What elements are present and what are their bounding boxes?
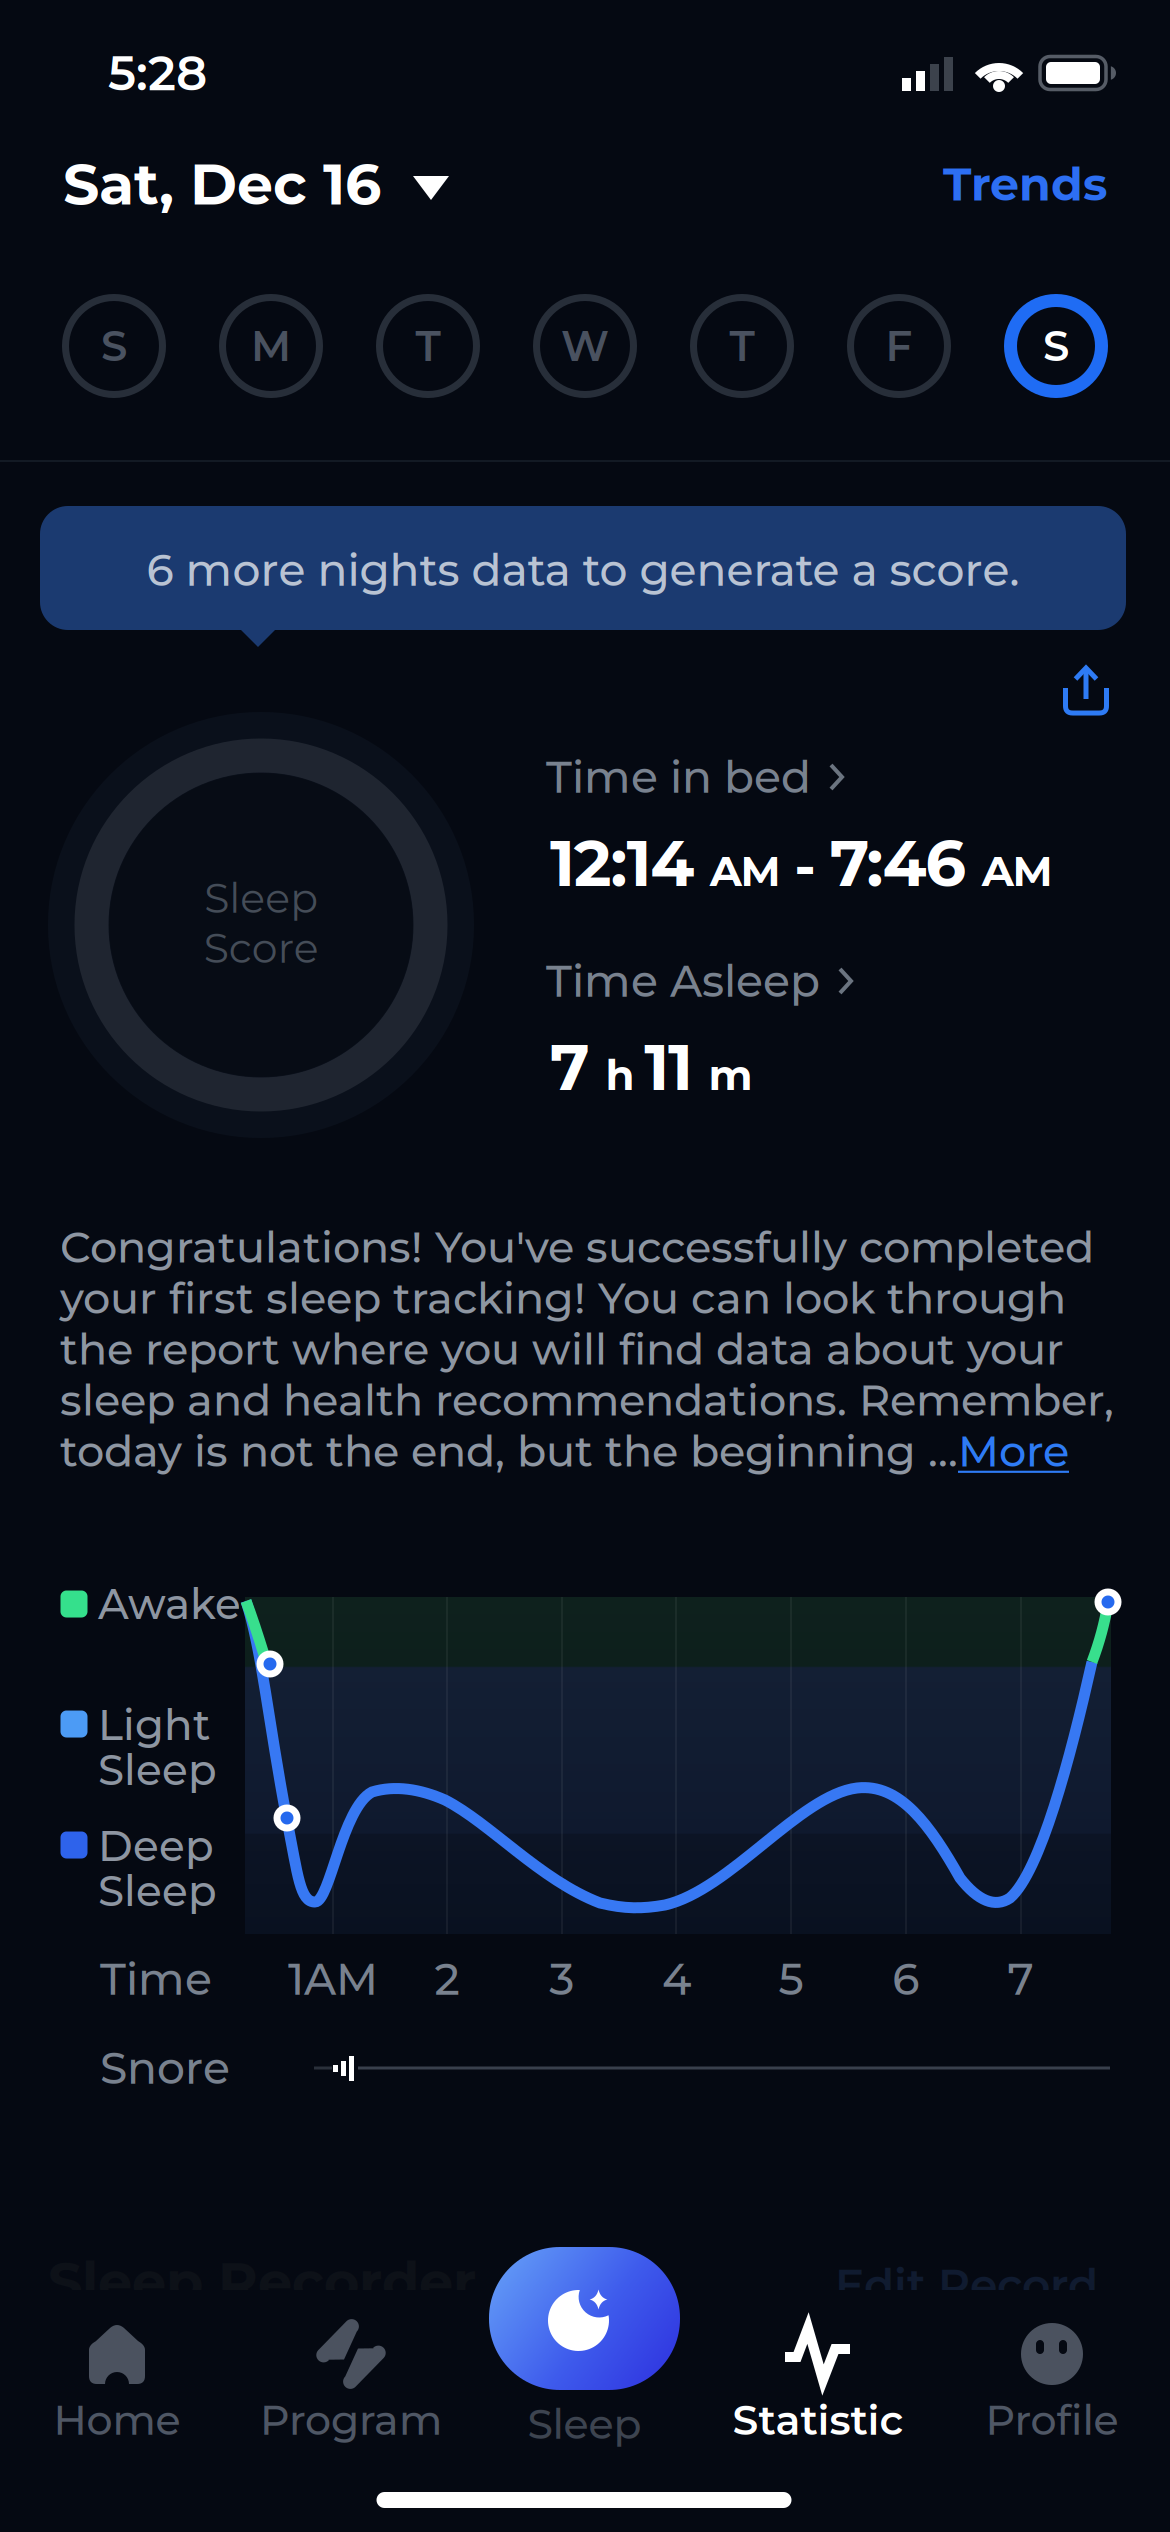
staticText: Sleep (527, 2399, 641, 2449)
button[interactable]: Sleep (489, 2247, 680, 2390)
staticText: Sleep Score (203, 873, 318, 973)
staticText: Time in bed (546, 750, 811, 804)
button[interactable]: T (690, 294, 794, 398)
staticText: your first sleep tracking! You can look … (60, 1272, 1066, 1324)
staticText: Awake (98, 1578, 241, 1630)
staticText: 7 (1007, 1952, 1033, 2006)
staticText: 5 (779, 1952, 804, 2006)
button[interactable]: F (847, 294, 951, 398)
button[interactable]: W (533, 294, 637, 398)
staticText: Time (100, 1952, 212, 2006)
staticText: Program (260, 2395, 442, 2445)
staticText: 6 (892, 1952, 919, 2006)
staticText: S (101, 320, 127, 372)
staticText: 3 (549, 1952, 574, 2006)
staticText: T (729, 320, 754, 372)
button[interactable]: Program (241, 2319, 461, 2449)
staticText: Sleep (98, 1865, 217, 1917)
button[interactable]: Time Asleep (546, 951, 946, 1011)
staticText: 12:14 AM - 7:46 AM (550, 825, 1053, 901)
staticText: 1AM (288, 1952, 378, 2006)
staticText: T (415, 320, 440, 372)
button[interactable]: Statistic (708, 2319, 928, 2449)
staticText: Snore (100, 2041, 230, 2095)
button[interactable]: S (1004, 294, 1108, 398)
staticText: 5:28 (108, 44, 207, 102)
staticText: Sleep (98, 1744, 217, 1796)
staticText: Profile (985, 2395, 1118, 2445)
button[interactable]: Time in bed (546, 747, 946, 807)
staticText: Sat, Dec 16 (63, 149, 381, 219)
staticText: Congratulations! You've successfully com… (60, 1221, 1094, 1273)
staticText: Trends (943, 156, 1107, 212)
button[interactable]: S (62, 294, 166, 398)
staticText: sleep and health recommendations. Rememb… (60, 1374, 1114, 1426)
staticText: Deep (98, 1820, 214, 1872)
button[interactable]: Sat, Dec 16 (63, 139, 583, 229)
staticText: 4 (662, 1952, 691, 2006)
staticText: Home (53, 2395, 180, 2445)
button[interactable]: More (958, 1425, 1069, 1477)
staticText: W (561, 320, 609, 372)
staticText: 7 h 11 m (550, 1029, 753, 1105)
button[interactable]: M (219, 294, 323, 398)
staticText: Time Asleep (546, 954, 820, 1008)
staticText: the report where you will find data abou… (60, 1323, 1064, 1375)
button[interactable]: Home (7, 2319, 227, 2449)
staticText: F (885, 320, 912, 372)
staticText: today is not the end, but the beginning … (60, 1425, 958, 1477)
staticText: 6 more nights data to generate a score. (146, 543, 1019, 597)
staticText: 2 (434, 1952, 459, 2006)
staticText: S (1043, 320, 1069, 372)
button[interactable]: T (376, 294, 480, 398)
button[interactable]: Trends (867, 149, 1107, 219)
staticText: M (251, 320, 291, 372)
button[interactable]: Share (1051, 656, 1121, 726)
button[interactable]: Profile (942, 2319, 1162, 2449)
staticText: Edit Record (835, 2258, 1098, 2312)
staticText: Light (98, 1699, 210, 1751)
staticText: More (958, 1425, 1069, 1477)
staticText: Statistic (732, 2395, 903, 2445)
